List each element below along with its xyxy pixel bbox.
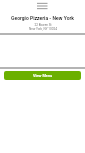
staticText: New York, NY 10024 — [29, 27, 57, 31]
button[interactable]: Open menu — [34, 0, 50, 12]
staticText: View Menu — [33, 73, 53, 78]
button[interactable]: View Menu — [4, 71, 81, 80]
staticText: Georgio Pizzeria - New York — [11, 15, 74, 21]
staticText: 22 Bowen St — [34, 23, 52, 27]
